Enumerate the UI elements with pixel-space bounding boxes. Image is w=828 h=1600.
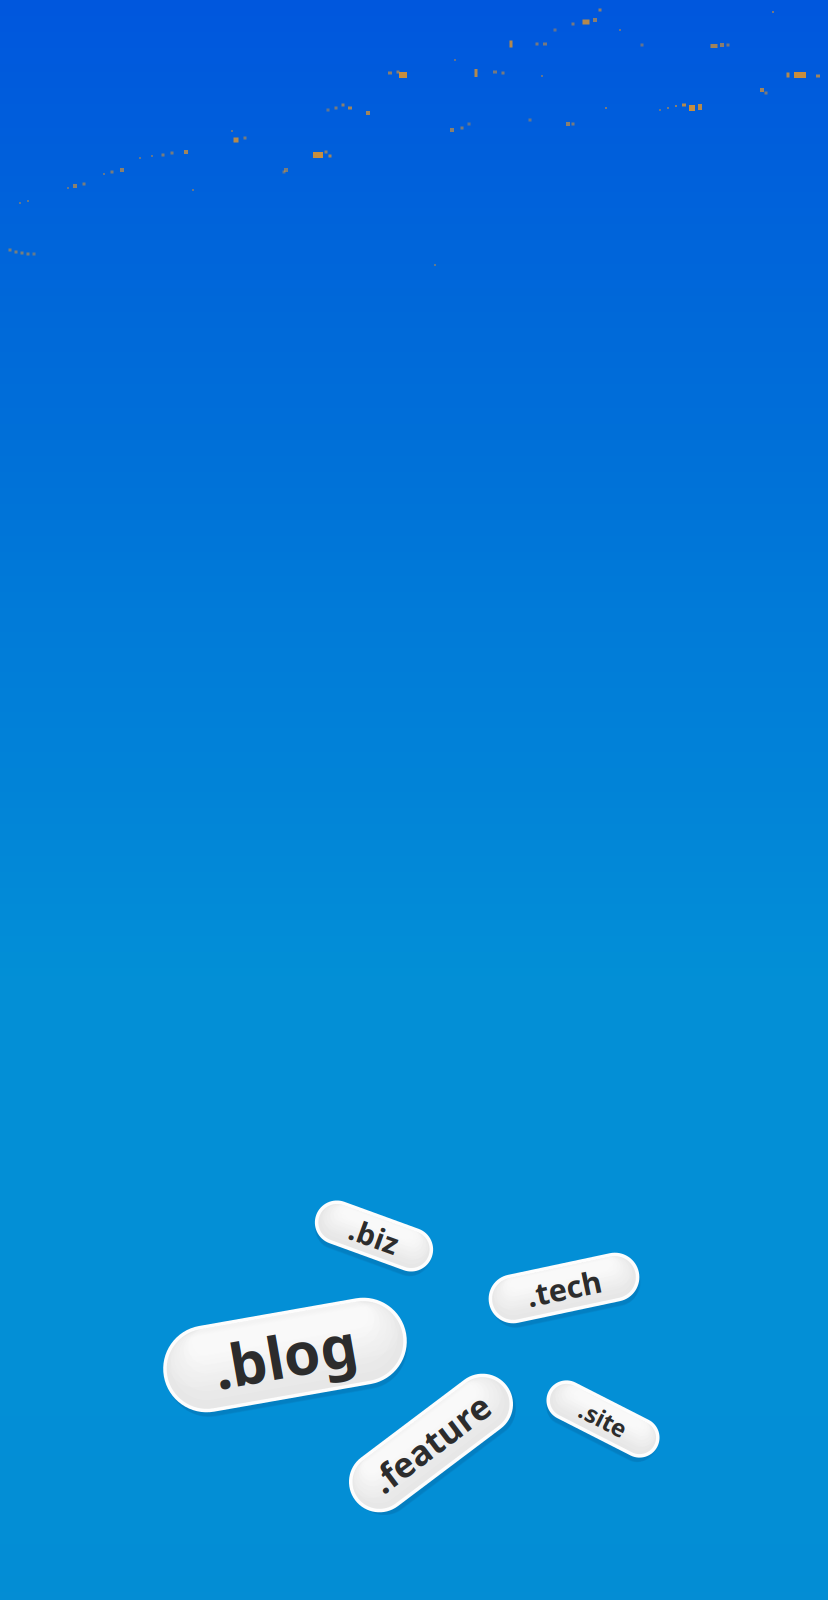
button[interactable]: .feature: [336, 1412, 526, 1473]
button[interactable]: .site: [542, 1399, 664, 1439]
staticText: .feature: [361, 1420, 500, 1466]
staticText: .site: [578, 1403, 628, 1435]
button[interactable]: .blog: [162, 1311, 408, 1398]
staticText: .biz: [349, 1216, 399, 1255]
staticText: .blog: [213, 1316, 357, 1394]
button[interactable]: .biz: [312, 1214, 435, 1258]
staticText: .tech: [526, 1268, 602, 1308]
button[interactable]: .tech: [487, 1263, 640, 1312]
